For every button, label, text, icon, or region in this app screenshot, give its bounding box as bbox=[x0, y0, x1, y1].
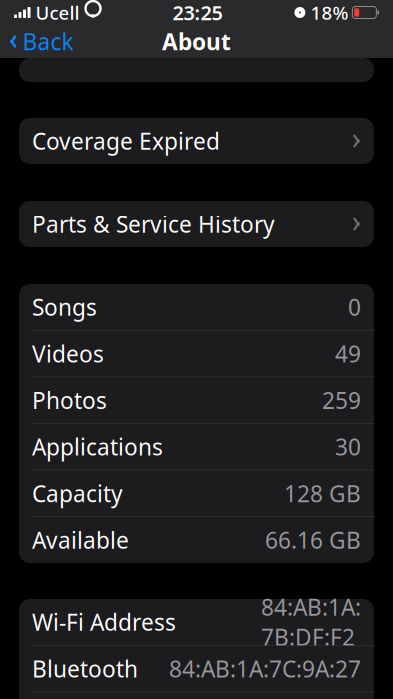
staticText: 18% bbox=[310, 0, 348, 25]
staticText: 128 GB bbox=[284, 478, 361, 508]
staticText: Capacity bbox=[32, 478, 123, 508]
staticText: 259 bbox=[322, 385, 361, 415]
staticText: Songs bbox=[32, 292, 97, 322]
staticText: 30 bbox=[335, 432, 361, 462]
staticText: Coverage Expired bbox=[32, 126, 220, 156]
staticText: 66.16 GB bbox=[265, 525, 361, 555]
staticText: 23:25 bbox=[172, 0, 222, 26]
staticText: Applications bbox=[32, 432, 163, 462]
staticText: Wi-Fi Address bbox=[32, 607, 176, 637]
staticText: FFWCN3T7FLR4 bbox=[195, 33, 361, 63]
button[interactable]: Back bbox=[0, 20, 73, 62]
staticText: About bbox=[162, 26, 231, 56]
staticText: 84:AB:1A:7C:9A:27 bbox=[169, 653, 361, 684]
button[interactable]: Parts & Service History bbox=[19, 201, 374, 247]
staticText: Serial Number bbox=[32, 33, 185, 63]
staticText: Photos bbox=[32, 385, 107, 415]
staticText: Bluetooth bbox=[32, 653, 138, 684]
staticText: Ucell bbox=[35, 0, 79, 25]
staticText: Available bbox=[32, 525, 129, 555]
staticText: Videos bbox=[32, 338, 104, 369]
staticText: 49 bbox=[335, 338, 361, 369]
staticText: Back bbox=[22, 26, 73, 56]
staticText: Parts & Service History bbox=[32, 209, 275, 239]
staticText: 0 bbox=[348, 292, 361, 322]
button[interactable]: Coverage Expired bbox=[19, 118, 374, 164]
staticText: 84:AB:1A:7B:DF:F2 bbox=[261, 592, 361, 652]
